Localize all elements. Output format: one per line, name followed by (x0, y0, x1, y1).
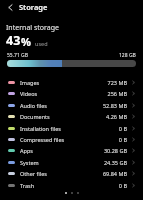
staticText: 30.28 GB (103, 147, 127, 154)
button[interactable]: Videos (0, 88, 143, 99)
staticText: Internal storage (6, 23, 59, 33)
staticText: 0 B (118, 182, 127, 189)
staticText: 0 B (118, 136, 127, 143)
button[interactable]: System (0, 157, 143, 168)
button[interactable]: Installation files (0, 123, 143, 134)
staticText: Apps (20, 147, 33, 154)
staticText: used (35, 40, 48, 47)
staticText: 723 MB (107, 79, 127, 86)
button[interactable]: Documents (0, 111, 143, 122)
staticText: 128 GB (119, 52, 136, 59)
staticText: 24.35 GB (103, 159, 127, 166)
button[interactable]: Back (3, 0, 17, 14)
staticText: Videos (20, 90, 38, 97)
staticText: Other files (20, 170, 47, 177)
staticText: 52.83 MB (102, 102, 127, 109)
staticText: Images (20, 79, 40, 86)
staticText: Documents (20, 113, 50, 120)
staticText: Audio files (20, 102, 47, 109)
button[interactable]: Images (0, 77, 143, 88)
button[interactable]: Compressed files (0, 134, 143, 145)
staticText: Compressed files (20, 136, 65, 143)
staticText: 69.84 MB (102, 170, 127, 177)
button[interactable]: Apps (0, 145, 143, 156)
staticText: 0 B (118, 125, 127, 132)
staticText: System (20, 159, 39, 166)
staticText: 43 (6, 32, 21, 49)
staticText: 55.71 GB (7, 52, 28, 59)
staticText: 256 MB (107, 90, 127, 97)
staticText: Installation files (20, 125, 61, 132)
button[interactable]: Trash (0, 180, 143, 191)
staticText: % (21, 34, 31, 49)
staticText: Trash (20, 182, 35, 189)
button[interactable]: Other files (0, 168, 143, 179)
button[interactable]: Audio files (0, 100, 143, 111)
staticText: 4.26 MB (106, 113, 127, 120)
staticText: Storage (19, 2, 48, 12)
